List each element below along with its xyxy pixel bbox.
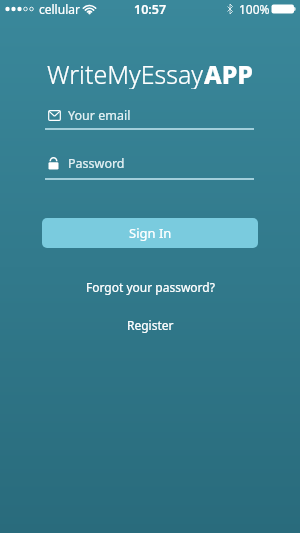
staticText: APP <box>204 57 254 89</box>
staticText: WriteMyEssay <box>47 57 204 89</box>
staticText: Your email <box>68 107 131 124</box>
button[interactable]: Your email <box>45 104 254 130</box>
staticText: 100% <box>239 1 270 17</box>
button[interactable]: Password <box>45 152 254 180</box>
staticText: Forgot your password? <box>86 279 215 295</box>
button[interactable]: Sign In <box>42 218 258 248</box>
staticText: cellular <box>39 1 80 17</box>
button[interactable]: Register <box>127 317 174 333</box>
staticText: 10:57 <box>134 1 167 18</box>
staticText: Register <box>127 317 174 333</box>
staticText: Password <box>68 155 125 172</box>
staticText: Sign In <box>129 224 172 242</box>
button[interactable]: Forgot your password? <box>86 279 215 295</box>
